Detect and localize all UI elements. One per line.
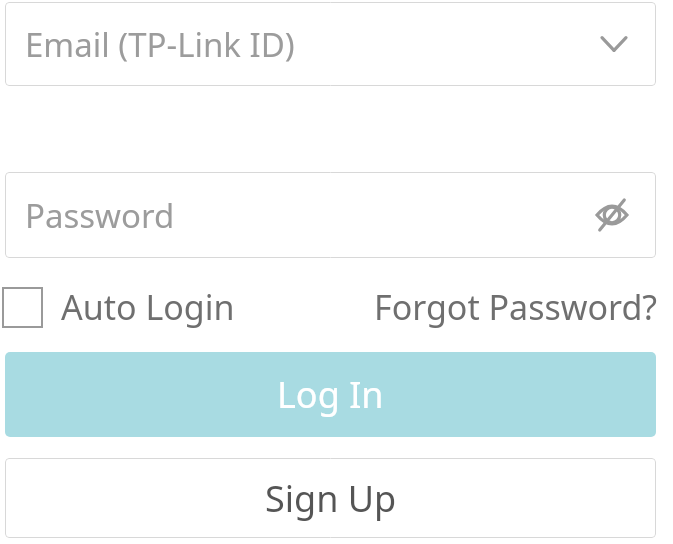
button[interactable]: Password [5,172,656,258]
staticText: Auto Login [61,284,235,330]
button[interactable]: Sign Up [5,458,656,538]
staticText: Forgot Password? [374,284,658,330]
staticText: Password [25,193,175,238]
button[interactable]: Auto Login [0,282,270,332]
button[interactable]: Email (TP-Link ID) [5,2,656,86]
button[interactable]: Show account list [594,24,634,64]
staticText: Sign Up [265,474,397,523]
button[interactable]: Show password [590,193,634,237]
staticText: Log In [277,370,384,419]
button[interactable]: Forgot Password? [370,282,673,332]
staticText: Email (TP-Link ID) [25,22,295,67]
button[interactable]: Log In [5,352,656,437]
